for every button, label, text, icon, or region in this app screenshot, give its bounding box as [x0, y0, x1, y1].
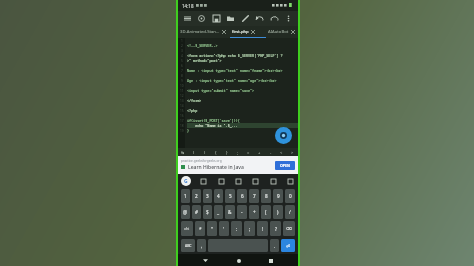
button[interactable]: Home	[233, 255, 244, 266]
button[interactable]: GIF	[216, 176, 226, 186]
staticText: ;	[249, 226, 251, 232]
staticText: =\<	[184, 226, 190, 231]
staticText: '	[223, 226, 225, 232]
button[interactable]: More	[268, 176, 278, 186]
button[interactable]: _	[214, 205, 223, 219]
button[interactable]: Redo	[268, 12, 281, 25]
button[interactable]: Settings	[233, 176, 243, 186]
button[interactable]: 5	[225, 189, 235, 203]
staticText: >" method="post">	[187, 58, 222, 63]
button[interactable]: +	[254, 148, 265, 156]
button[interactable]: Google	[181, 176, 191, 186]
button[interactable]: -	[265, 148, 276, 156]
button[interactable]: Open folder	[224, 12, 237, 25]
button[interactable]: ⌫	[283, 221, 295, 236]
staticText: 3	[181, 49, 183, 53]
staticText: $	[206, 209, 209, 215]
staticText: <?php	[187, 108, 198, 113]
button[interactable]: 8	[261, 189, 271, 203]
button[interactable]: Back	[200, 255, 211, 266]
staticText: _	[217, 209, 220, 215]
button[interactable]: ;	[232, 148, 243, 156]
button[interactable]: 9	[273, 189, 283, 203]
staticText: (	[193, 150, 195, 155]
staticText: 11	[180, 89, 184, 93]
button[interactable]: Run preview	[275, 127, 292, 144]
button[interactable]: $	[203, 205, 212, 219]
staticText: +	[253, 209, 256, 215]
button[interactable]: OPEN	[275, 161, 295, 170]
button[interactable]: &	[225, 205, 235, 219]
staticText: if(isset($_POST['save'])){	[187, 118, 240, 123]
staticText: /	[289, 209, 291, 215]
staticText: Learn Hibernate in Java	[188, 164, 244, 171]
button[interactable]: /	[285, 205, 295, 219]
staticText: 18	[180, 124, 184, 128]
button[interactable]: 3D-Animated-Stan...	[178, 26, 230, 38]
button[interactable]: .	[270, 239, 279, 252]
staticText: ?	[275, 226, 277, 232]
button[interactable]: 6	[237, 189, 247, 203]
button[interactable]: ,	[197, 239, 206, 252]
button[interactable]: ABC	[181, 239, 195, 252]
button[interactable]: '	[219, 221, 229, 236]
button[interactable]: Voice	[285, 176, 295, 186]
button[interactable]: ↹	[178, 148, 188, 156]
button[interactable]: )	[273, 205, 283, 219]
staticText: 12	[180, 94, 184, 98]
button[interactable]: *	[195, 221, 205, 236]
staticText: 7	[181, 69, 183, 73]
button[interactable]: 1	[181, 189, 190, 203]
staticText: ,	[201, 243, 203, 249]
button[interactable]: #	[192, 205, 201, 219]
staticText: =	[247, 150, 250, 155]
button[interactable]: Edit	[239, 12, 252, 25]
button[interactable]: +	[249, 205, 259, 219]
staticText: .	[274, 243, 276, 249]
staticText: 8	[265, 193, 268, 199]
button[interactable]: 0	[285, 189, 295, 203]
button[interactable]: !	[257, 221, 268, 236]
button[interactable]: Sticker	[250, 176, 260, 186]
button[interactable]: first.php	[230, 26, 266, 38]
staticText: -	[241, 209, 243, 215]
button[interactable]: More options	[282, 12, 295, 25]
button[interactable]: -	[237, 205, 247, 219]
button[interactable]: practice.geeksforgeeks.org	[181, 156, 295, 174]
staticText: ABC	[185, 243, 192, 248]
button[interactable]: Clipboard	[198, 176, 208, 186]
staticText: 10	[180, 84, 184, 88]
button[interactable]: 7	[249, 189, 259, 203]
button[interactable]: (	[261, 205, 271, 219]
button[interactable]: (	[188, 148, 199, 156]
button[interactable]: 4	[214, 189, 223, 203]
button[interactable]: <	[276, 148, 287, 156]
staticText: ⏎	[286, 243, 291, 249]
button[interactable]: >	[287, 148, 298, 156]
button[interactable]: Menu	[181, 12, 194, 25]
button[interactable]: Undo	[253, 12, 266, 25]
button[interactable]: )	[199, 148, 210, 156]
staticText: @	[183, 209, 188, 215]
button[interactable]: =	[243, 148, 254, 156]
button[interactable]: {	[210, 148, 221, 156]
button[interactable]: 2	[192, 189, 201, 203]
button[interactable]: }	[221, 148, 232, 156]
button[interactable]: ;	[244, 221, 255, 236]
button[interactable]: Settings	[195, 12, 208, 25]
button[interactable]: Enter	[281, 239, 295, 252]
button[interactable]: ?	[270, 221, 281, 236]
button[interactable]: 3	[203, 189, 212, 203]
staticText: +	[258, 150, 261, 155]
button[interactable]: :	[231, 221, 242, 236]
button[interactable]: @	[181, 205, 190, 219]
button[interactable]: =\<	[181, 221, 193, 236]
staticText: &	[228, 209, 232, 215]
button[interactable]: AIAutoBot	[266, 26, 298, 38]
button[interactable]: "	[207, 221, 217, 236]
button[interactable]: Recents	[265, 255, 276, 266]
staticText: ⌫	[286, 226, 292, 231]
button[interactable]: Save	[210, 12, 223, 25]
staticText: 6	[241, 193, 244, 199]
